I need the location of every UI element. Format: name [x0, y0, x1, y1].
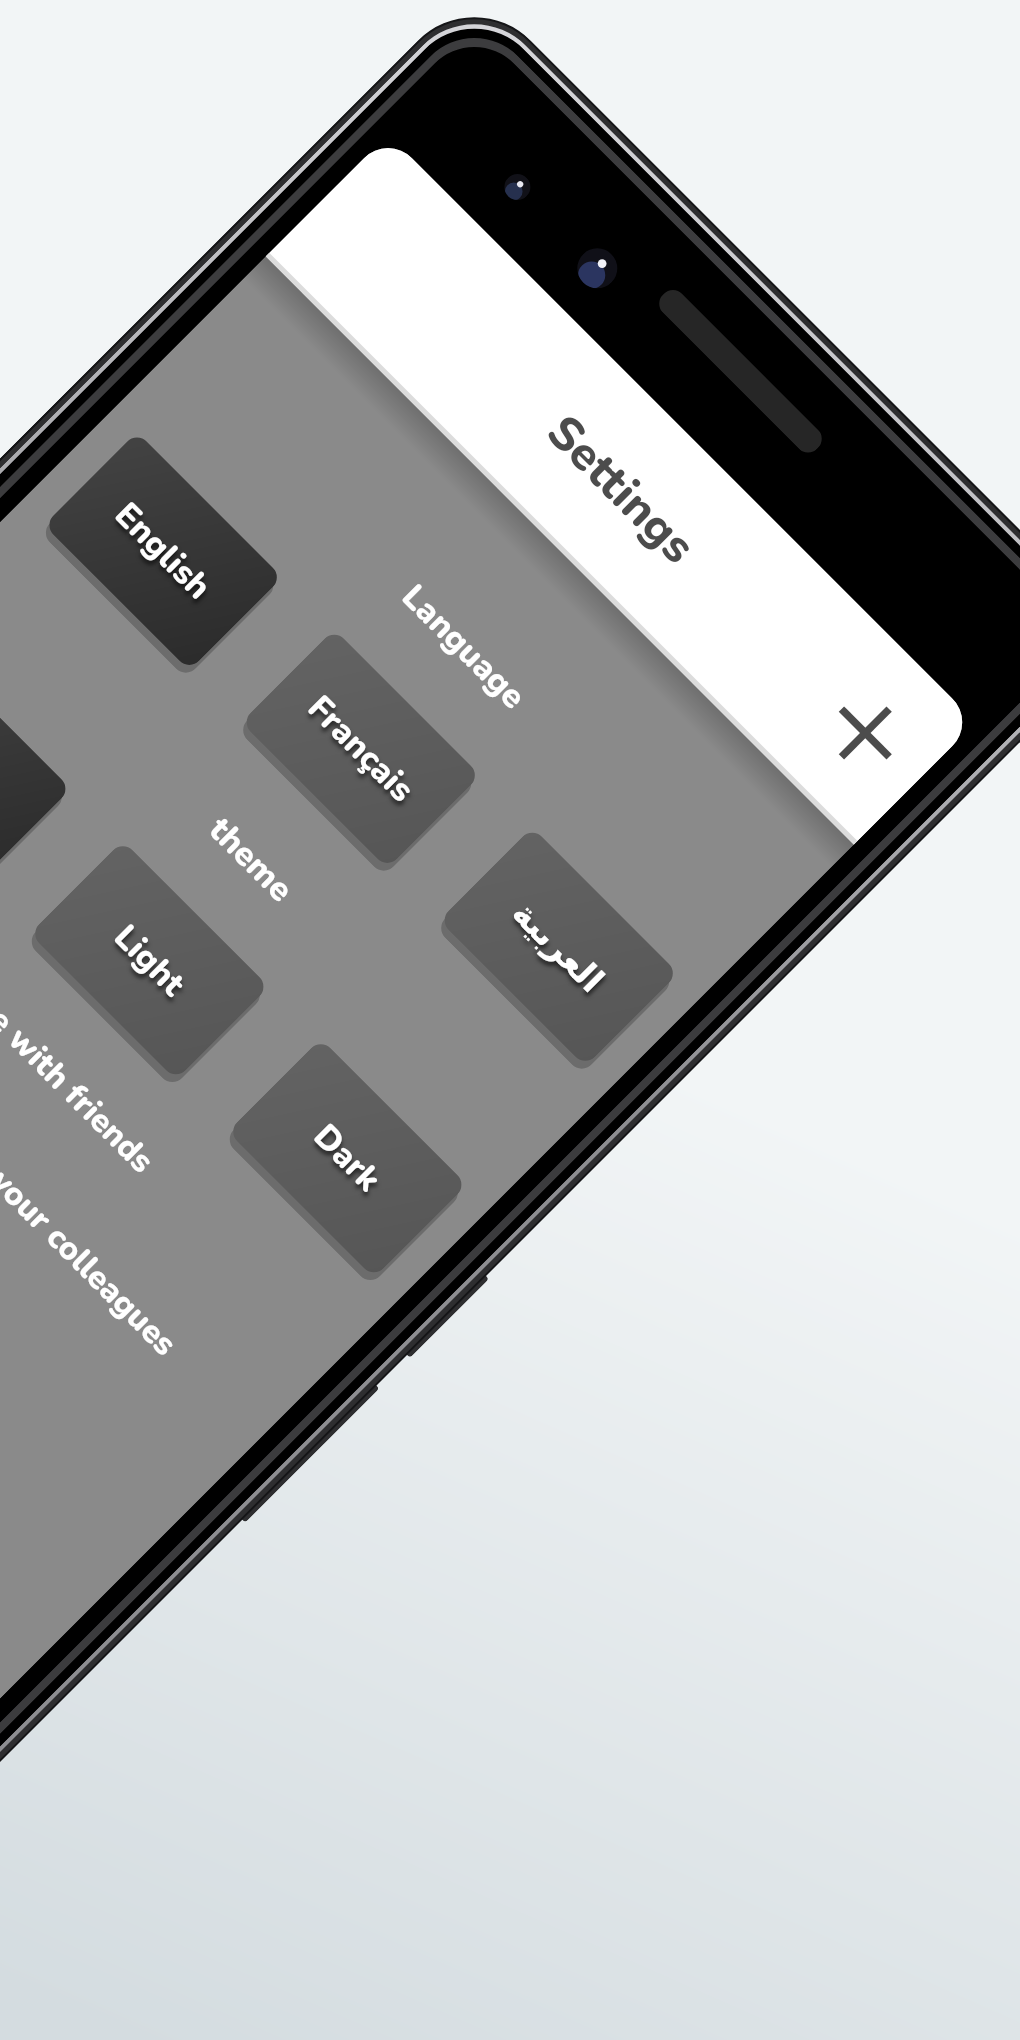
staticText: Share with friends	[0, 755, 355, 1375]
staticText: Language	[153, 336, 774, 957]
button[interactable]: Light	[29, 840, 269, 1080]
staticText: Light	[104, 915, 196, 1006]
staticText: Français	[297, 685, 425, 813]
staticText: العربية	[505, 893, 613, 1001]
staticText: System	[0, 705, 10, 821]
staticText: Settings	[305, 172, 938, 806]
staticText: Dark	[303, 1114, 391, 1202]
button[interactable]: English	[44, 432, 283, 671]
button[interactable]: Add	[800, 668, 930, 798]
button[interactable]: Français	[241, 629, 481, 869]
button[interactable]: Dark	[227, 1038, 467, 1278]
button[interactable]: العربية	[439, 827, 679, 1067]
staticText: English	[104, 492, 222, 610]
button[interactable]: System	[0, 643, 71, 882]
staticText: theme	[0, 549, 561, 1170]
staticText: or share results with your colleagues	[0, 835, 275, 1455]
